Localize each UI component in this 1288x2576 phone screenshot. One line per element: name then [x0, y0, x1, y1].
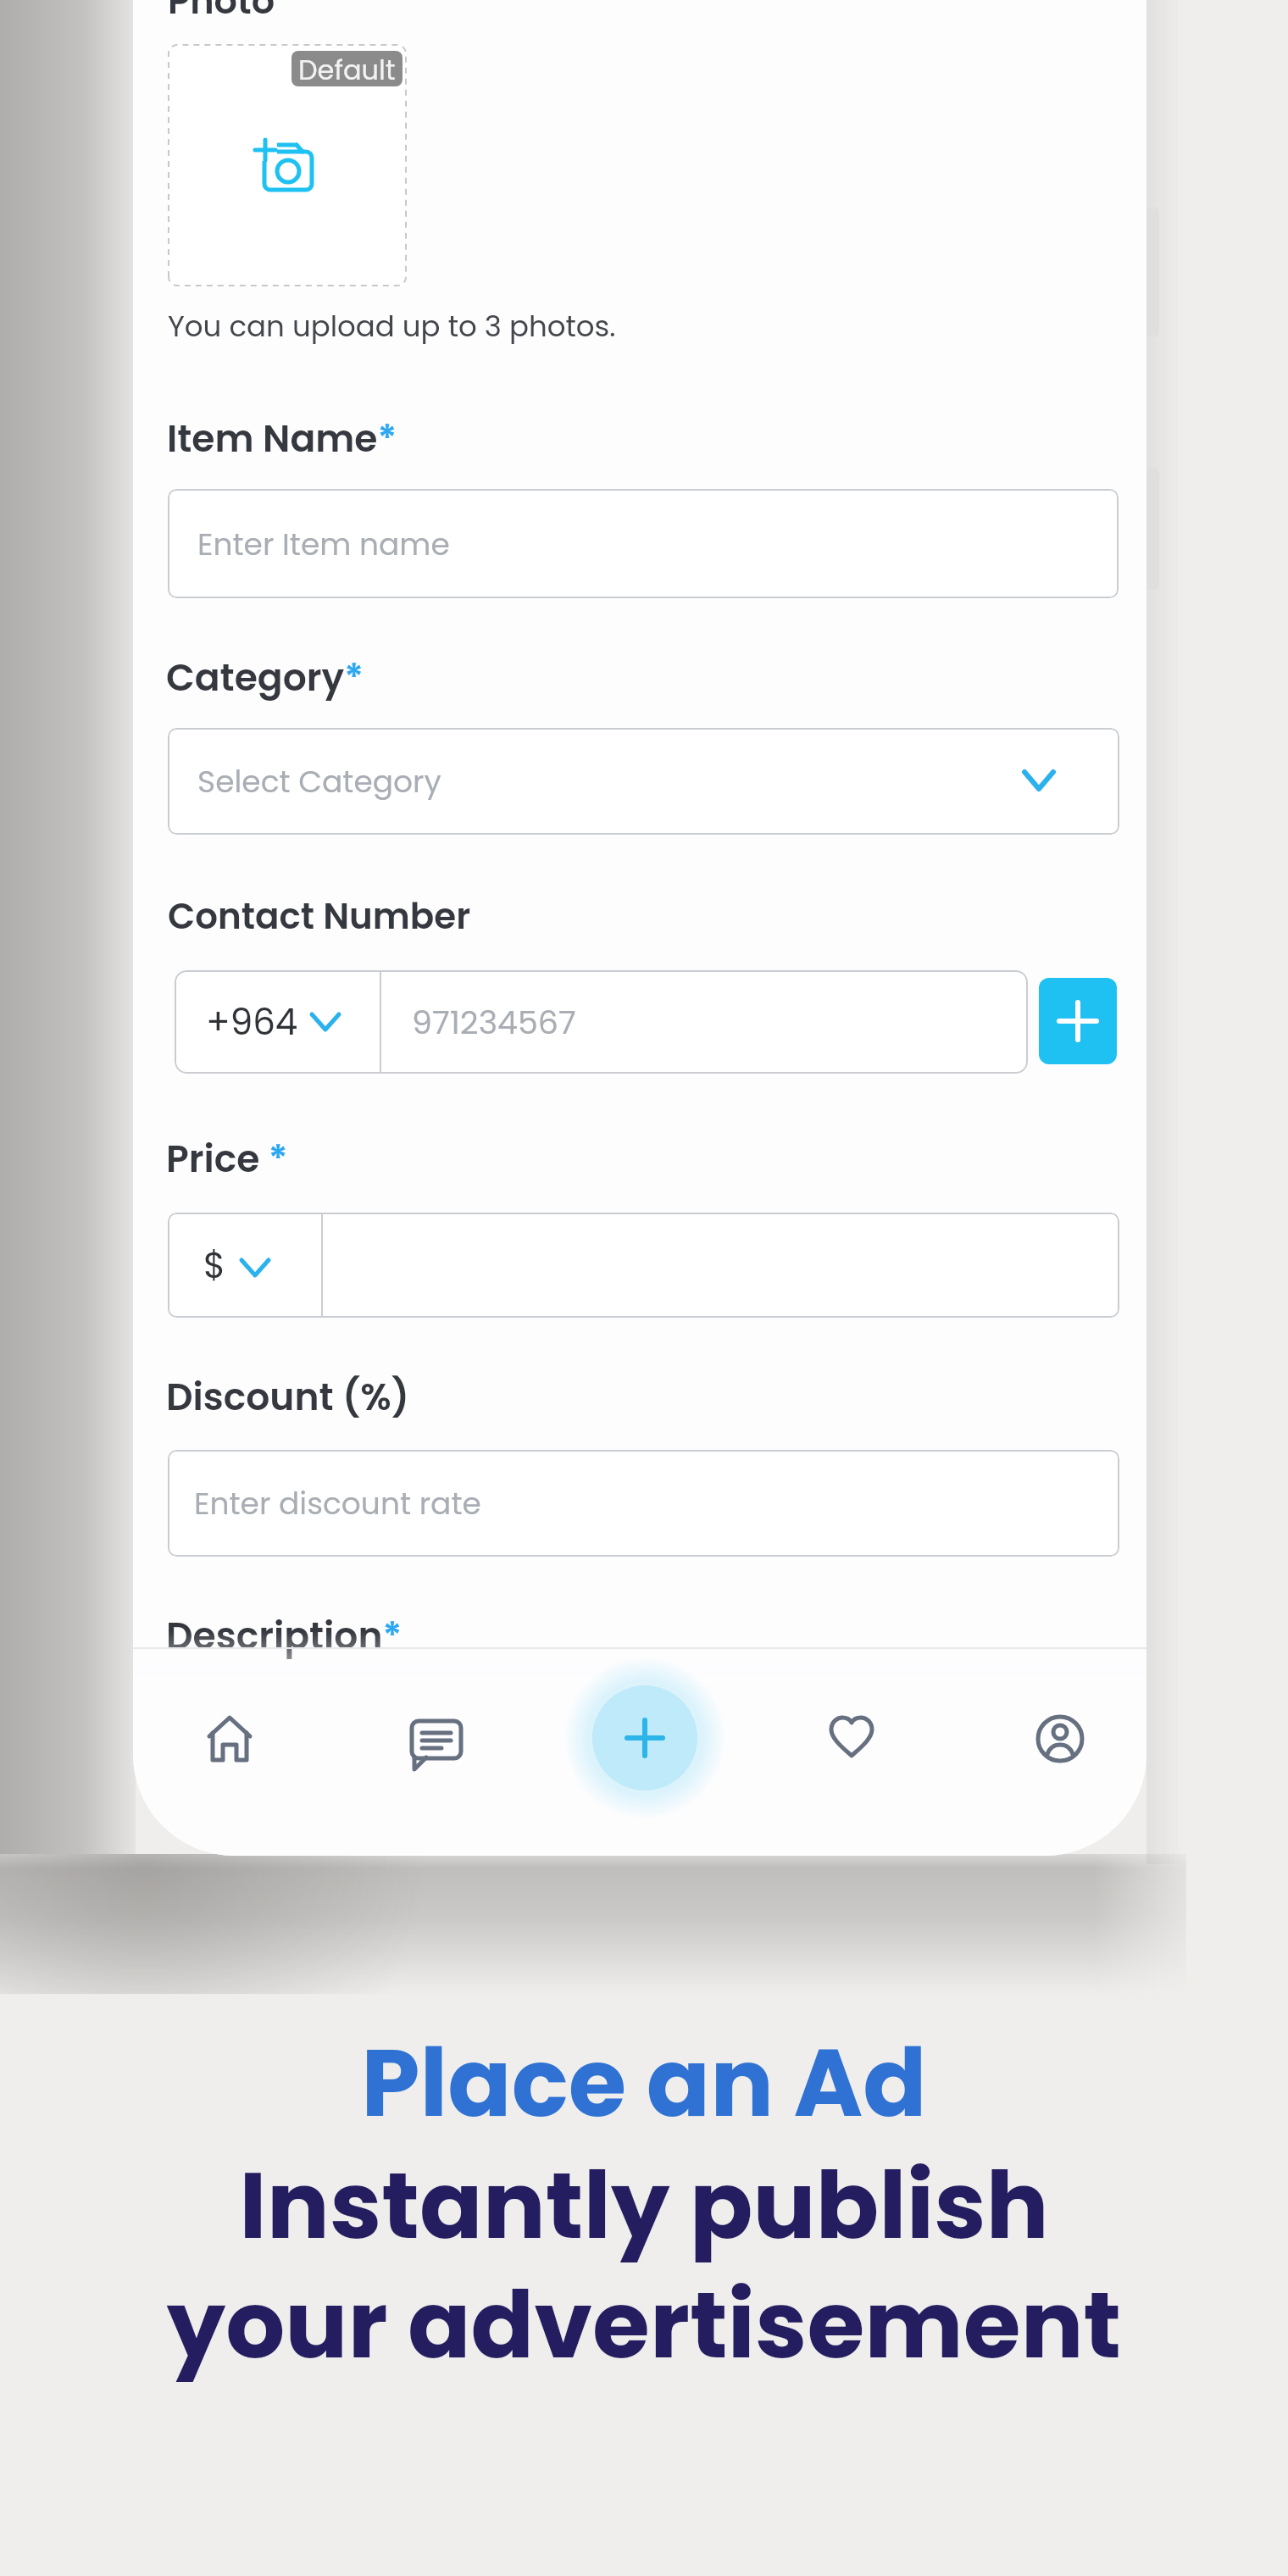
staticText: Photo [168, 0, 275, 26]
button[interactable]: $ [168, 1213, 1119, 1318]
staticText: +964 [206, 997, 298, 1047]
button[interactable] [179, 1687, 280, 1789]
staticText: Enter Item name [197, 523, 450, 565]
staticText: Category* [166, 652, 364, 704]
staticText: $ [203, 1241, 226, 1291]
staticText: 971234567 [412, 1000, 576, 1045]
button[interactable] [1039, 978, 1117, 1064]
staticText: Contact Number [168, 891, 471, 941]
button[interactable]: +964 [175, 970, 1028, 1074]
staticText: Discount (%) [166, 1371, 410, 1424]
staticText: your advertisement [0, 2260, 1288, 2390]
staticText: Select Category [197, 760, 441, 802]
staticText: Item Name* [167, 413, 397, 465]
button[interactable] [384, 1687, 486, 1789]
staticText: Instantly publish [0, 2140, 1288, 2271]
button[interactable]: Select Category [168, 728, 1119, 835]
staticText: Place an Ad [0, 2017, 1288, 2148]
button[interactable]: Enter discount rate [168, 1450, 1119, 1557]
staticText: You can upload up to 3 photos. [168, 306, 616, 347]
staticText: Description* [166, 1610, 402, 1663]
button[interactable] [801, 1687, 902, 1789]
button[interactable] [573, 1666, 717, 1810]
staticText: Enter discount rate [194, 1482, 481, 1524]
button[interactable] [169, 45, 406, 286]
staticText: Price * [166, 1133, 288, 1185]
button[interactable]: Default [291, 51, 402, 86]
staticText: Default [298, 51, 396, 86]
button[interactable]: Enter Item name [168, 489, 1119, 598]
button[interactable] [1009, 1687, 1111, 1789]
